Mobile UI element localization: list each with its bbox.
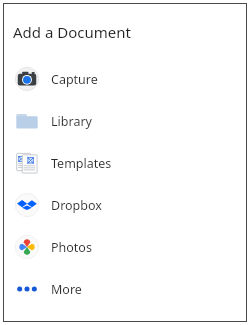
staticText: Add a Document <box>13 22 131 42</box>
button[interactable]: Capture <box>3 58 247 100</box>
button[interactable]: Templates <box>3 142 247 184</box>
other: Photos <box>15 235 39 259</box>
staticText: More <box>51 281 82 298</box>
button[interactable]: Photos <box>3 226 247 268</box>
button[interactable]: More <box>3 268 247 310</box>
staticText: Templates <box>51 155 112 172</box>
other: Library <box>15 109 39 133</box>
other: Templates <box>15 151 39 175</box>
staticText: Dropbox <box>51 197 102 214</box>
button[interactable]: Dropbox <box>3 184 247 226</box>
button[interactable]: Library <box>3 100 247 142</box>
staticText: Library <box>51 113 92 130</box>
staticText: Photos <box>51 239 92 256</box>
staticText: Capture <box>51 71 98 88</box>
other: Capture <box>15 67 39 91</box>
other: More <box>15 277 39 301</box>
other: Dropbox <box>15 193 39 217</box>
